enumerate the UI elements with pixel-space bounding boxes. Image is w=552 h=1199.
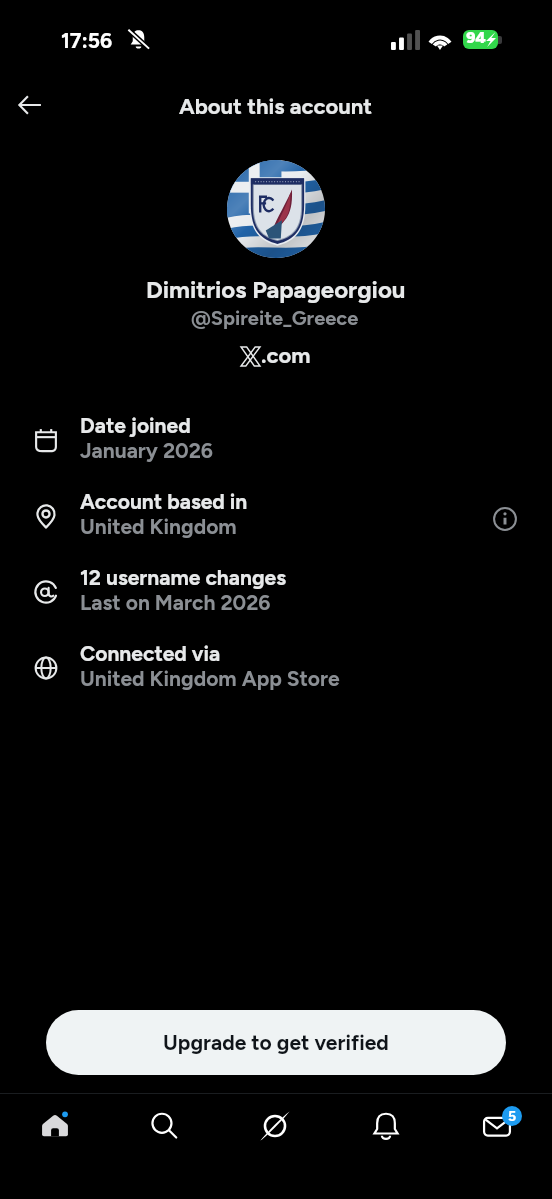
button[interactable]: Home — [0, 1094, 110, 1156]
staticText: Last on March 2026 — [80, 590, 271, 615]
staticText: Account based in — [80, 489, 248, 514]
button[interactable]: Connected via — [0, 633, 552, 709]
button[interactable]: Account based in — [0, 481, 552, 557]
staticText: Dimitrios Papageorgiou — [146, 275, 406, 304]
button[interactable]: Upgrade to get verified — [46, 1010, 506, 1075]
button[interactable]: Back — [8, 83, 52, 127]
button[interactable]: Messages — [442, 1094, 552, 1156]
staticText: @Spireite_Greece — [191, 306, 359, 330]
button[interactable]: Search — [109, 1094, 219, 1156]
staticText: United Kingdom App Store — [80, 666, 340, 691]
staticText: 5 — [508, 1108, 517, 1125]
staticText: 12 username changes — [80, 565, 286, 590]
button[interactable]: Grok — [220, 1094, 330, 1156]
button[interactable]: Notifications — [331, 1094, 441, 1156]
staticText: Connected via — [80, 641, 221, 666]
staticText: 94 — [466, 30, 486, 47]
staticText: About this account — [179, 93, 373, 119]
staticText: .com — [261, 342, 311, 368]
button[interactable]: More info — [485, 499, 525, 539]
staticText: 17:56 — [61, 28, 113, 53]
staticText: United Kingdom — [80, 514, 237, 539]
staticText: January 2026 — [80, 438, 213, 463]
button[interactable]: Date joined — [0, 405, 552, 481]
staticText: Date joined — [80, 413, 191, 438]
button[interactable]: 12 username changes — [0, 557, 552, 633]
staticText: Upgrade to get verified — [163, 1030, 389, 1055]
